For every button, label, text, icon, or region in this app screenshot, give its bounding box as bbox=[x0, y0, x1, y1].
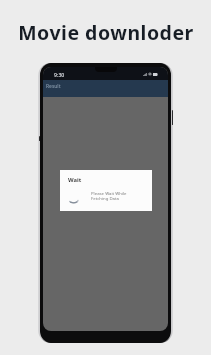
staticText: 9:30 bbox=[54, 71, 65, 78]
staticText: Wait bbox=[68, 176, 82, 184]
other: Cellular signal bbox=[143, 73, 147, 76]
other: Wi-Fi bbox=[148, 73, 152, 76]
other: Volume button bbox=[39, 136, 40, 141]
other: Battery bbox=[153, 73, 158, 76]
button[interactable]: Result bbox=[43, 80, 168, 97]
staticText: Result bbox=[46, 83, 61, 90]
staticText: Movie downloder bbox=[18, 19, 194, 46]
other: Power button bbox=[172, 110, 173, 125]
button[interactable]: Wait bbox=[60, 170, 152, 211]
other: Loading bbox=[69, 198, 78, 203]
staticText: Please Wait While Fetching Data bbox=[91, 190, 127, 201]
